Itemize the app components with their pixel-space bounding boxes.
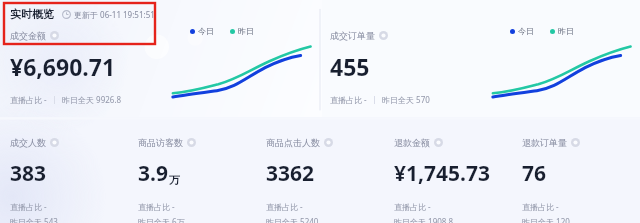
staticText: 昨日全天 120 <box>522 216 570 223</box>
button[interactable]: 刷新 <box>62 10 71 19</box>
staticText: 退款金额 <box>394 137 430 148</box>
staticText: 昨日 <box>558 26 574 36</box>
button[interactable]: 说明 <box>324 138 333 147</box>
staticText: 383 <box>10 159 47 188</box>
staticText: 昨日全天 9926.8 <box>62 94 122 105</box>
staticText: 今日 <box>198 26 214 36</box>
button[interactable]: 成交金额 <box>10 30 59 41</box>
staticText: 更新于 06-11 19:51:51 <box>74 9 155 20</box>
staticText: 直播占比 - <box>522 201 559 212</box>
staticText: 直播占比 - <box>330 94 367 105</box>
staticText: 昨日全天 1908.8 <box>394 216 454 223</box>
staticText: 退款订单量 <box>522 137 567 148</box>
staticText: 昨日全天 6万 <box>138 216 185 223</box>
staticText: ¥1,745.73 <box>394 159 490 188</box>
staticText: 商品点击人数 <box>266 137 320 148</box>
button[interactable]: 成交订单量 <box>330 30 388 41</box>
button[interactable]: 说明 <box>50 138 59 147</box>
staticText: 实时概览 <box>10 7 54 21</box>
staticText: 3.9 <box>138 159 168 188</box>
button[interactable]: 商品访客数 <box>128 117 256 223</box>
staticText: 直播占比 - <box>394 201 431 212</box>
button[interactable]: 实时概览 <box>0 0 320 117</box>
staticText: 成交人数 <box>10 137 46 148</box>
staticText: ¥6,690.71 <box>10 51 116 82</box>
staticText: 昨日全天 543 <box>10 216 58 223</box>
staticText: 成交订单量 <box>330 30 375 41</box>
staticText: 昨日 <box>238 26 254 36</box>
button[interactable]: 实时概览 <box>10 7 155 21</box>
staticText: 直播占比 - <box>266 201 303 212</box>
staticText: 昨日全天 570 <box>382 94 430 105</box>
staticText: 昨日全天 5240 <box>266 216 319 223</box>
button[interactable]: 说明 <box>50 31 59 40</box>
button[interactable]: 退款订单量 <box>512 117 640 223</box>
staticText: 商品访客数 <box>138 137 183 148</box>
button[interactable]: 说明 <box>571 138 580 147</box>
staticText: 直播占比 - <box>10 201 47 212</box>
button[interactable]: 说明 <box>187 138 196 147</box>
staticText: 今日 <box>518 26 534 36</box>
staticText: 76 <box>522 159 547 188</box>
staticText: 万 <box>169 173 180 187</box>
button[interactable]: 说明 <box>434 138 443 147</box>
button[interactable]: 退款金额 <box>384 117 512 223</box>
staticText: 直播占比 - <box>10 94 47 105</box>
staticText: 455 <box>330 51 370 82</box>
staticText: 3362 <box>266 159 315 188</box>
staticText: 直播占比 - <box>138 201 175 212</box>
button[interactable]: 成交人数 <box>0 117 128 223</box>
button[interactable]: 说明 <box>379 31 388 40</box>
button[interactable]: 成交订单量 <box>320 0 640 117</box>
staticText: 成交金额 <box>10 30 46 41</box>
button[interactable]: 商品点击人数 <box>256 117 384 223</box>
